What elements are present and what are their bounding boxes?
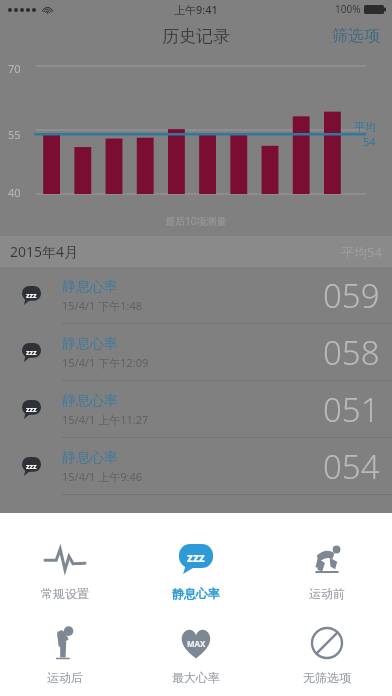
staticText: 静息心率 — [62, 449, 118, 467]
staticText: 15/4/1 上午11:27 — [62, 412, 149, 427]
button[interactable]: 无筛选项 — [261, 611, 392, 696]
staticText: 静息心率 — [62, 392, 118, 410]
staticText: 55 — [8, 127, 21, 142]
staticText: 最大心率 — [172, 670, 220, 685]
button[interactable]: zzz — [0, 324, 392, 381]
staticText: 15/4/1 下午12:09 — [62, 355, 149, 370]
staticText: 051 — [323, 387, 380, 432]
staticText: 筛选项 — [332, 26, 380, 46]
staticText: 静息心率 — [62, 335, 118, 353]
staticText: zzz — [26, 290, 37, 300]
staticText: zzz — [26, 404, 37, 414]
staticText: 运动后 — [47, 670, 83, 685]
staticText: 15/4/1 下午1:48 — [62, 298, 143, 313]
button[interactable]: 运动后 — [0, 611, 130, 696]
staticText: 54 — [363, 134, 376, 149]
staticText: 最后10项测量 — [165, 214, 227, 228]
staticText: MAX — [187, 638, 206, 649]
staticText: 40 — [8, 185, 21, 200]
staticText: 2015年4月 — [10, 242, 79, 261]
staticText: zzz — [26, 347, 37, 357]
staticText: 100% — [335, 2, 361, 16]
staticText: 平均 — [354, 120, 376, 134]
staticText: 054 — [323, 444, 380, 489]
staticText: 平均54 — [341, 243, 382, 261]
button[interactable]: 筛选项 — [320, 20, 392, 52]
button[interactable]: zzz — [0, 438, 392, 495]
button[interactable]: zzz — [0, 267, 392, 324]
staticText: zzz — [187, 549, 205, 565]
button[interactable]: 常规设置 — [0, 527, 130, 611]
staticText: 运动前 — [309, 586, 345, 601]
staticText: 无筛选项 — [303, 670, 351, 685]
staticText: zzz — [26, 461, 37, 471]
button[interactable]: 最大心率 — [130, 611, 261, 696]
staticText: 历史记录 — [162, 26, 230, 47]
staticText: 70 — [8, 61, 21, 76]
button[interactable]: zzz — [0, 381, 392, 438]
staticText: 059 — [323, 273, 380, 318]
staticText: 静息心率 — [172, 586, 220, 601]
button[interactable]: 静息心率 — [130, 527, 261, 611]
staticText: 静息心率 — [62, 278, 118, 296]
button[interactable]: 运动前 — [261, 527, 392, 611]
staticText: 上午9:41 — [174, 2, 218, 17]
staticText: 常规设置 — [41, 586, 89, 601]
staticText: 058 — [323, 330, 380, 375]
staticText: 15/4/1 上午9:46 — [62, 469, 143, 484]
